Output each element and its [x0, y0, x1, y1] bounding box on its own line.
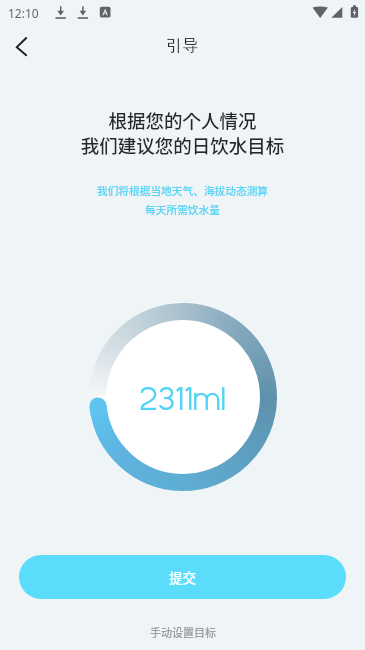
- staticText: 引导: [166, 35, 199, 55]
- button[interactable]: 提交: [19, 555, 346, 599]
- staticText: 根据您的个人情况 我们建议您的日饮水目标: [0, 107, 365, 158]
- button[interactable]: 手动设置目标: [140, 621, 226, 643]
- staticText: 手动设置目标: [150, 624, 216, 640]
- button[interactable]: Back: [0, 24, 44, 68]
- staticText: 12:10: [8, 5, 39, 21]
- staticText: 提交: [169, 567, 196, 587]
- staticText: 2311ml: [139, 379, 227, 416]
- staticText: 我们将根据当地天气、海拔动态测算 每天所需饮水量: [0, 183, 365, 217]
